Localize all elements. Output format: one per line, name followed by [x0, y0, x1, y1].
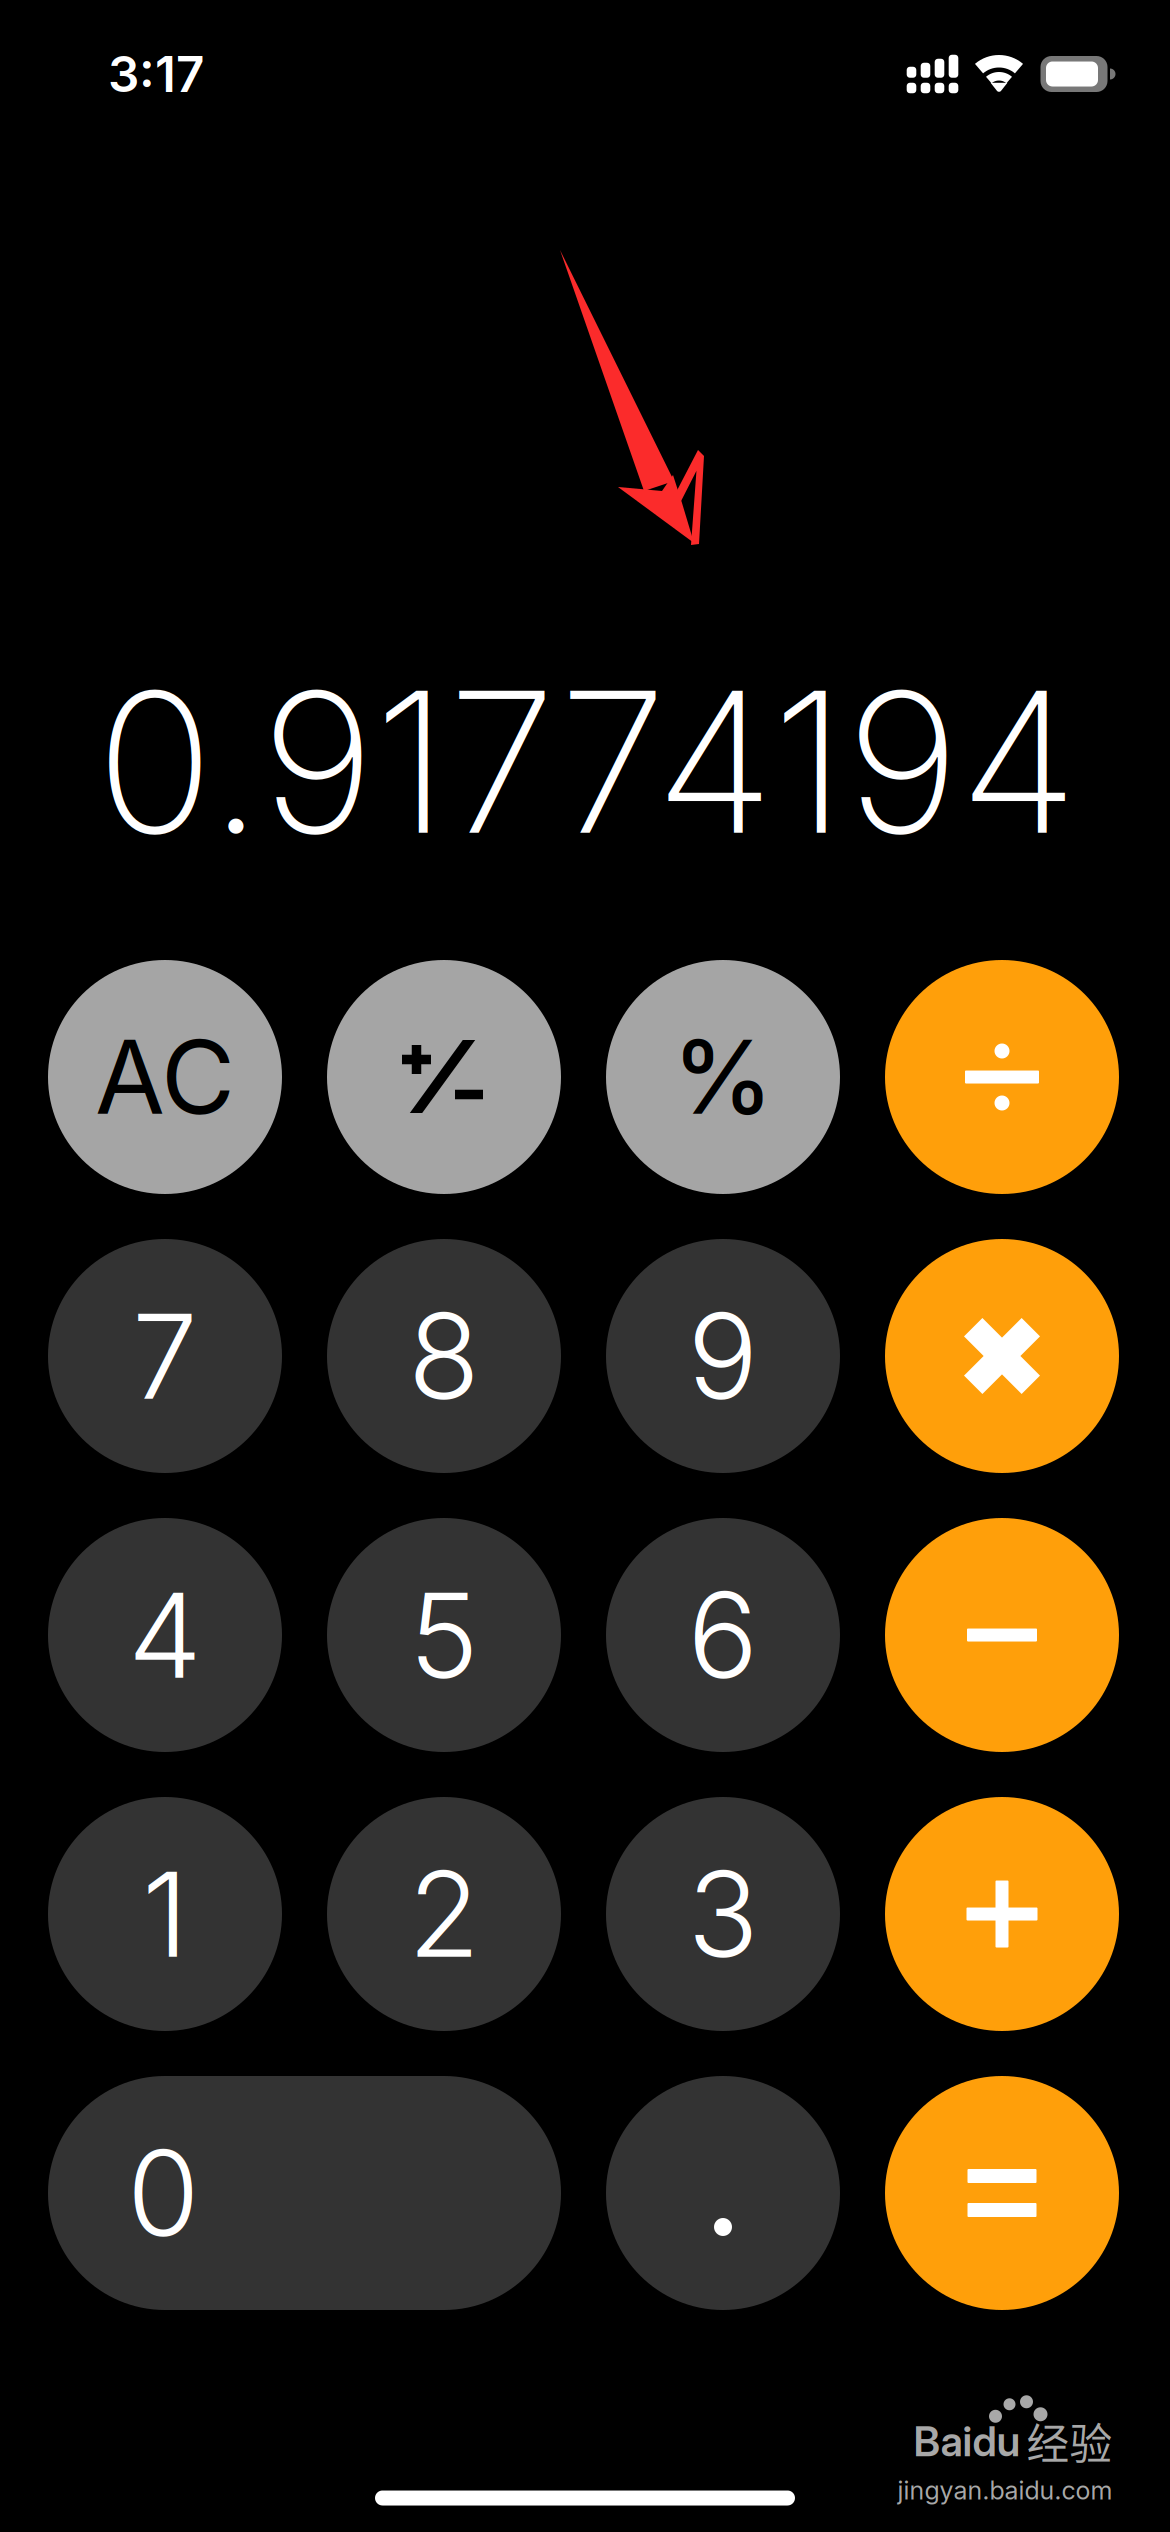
- staticText: 5: [409, 1564, 479, 1706]
- staticText: AC: [95, 1016, 235, 1138]
- button[interactable]: 4: [48, 1518, 282, 1752]
- button[interactable]: 2: [327, 1797, 561, 2031]
- button[interactable]: 7: [48, 1239, 282, 1473]
- button[interactable]: 8: [327, 1239, 561, 1473]
- button[interactable]: 3: [606, 1797, 840, 2031]
- staticText: 0.91774194: [96, 644, 1078, 880]
- staticText: %: [672, 1016, 773, 1138]
- button[interactable]: %: [606, 960, 840, 1194]
- button[interactable]: Divide: [885, 960, 1119, 1194]
- button[interactable]: 9: [606, 1239, 840, 1473]
- staticText: 3:17: [108, 44, 204, 104]
- staticText: jingyan.baidu.com: [897, 2475, 1112, 2506]
- staticText: 7: [132, 1285, 198, 1427]
- button[interactable]: 6: [606, 1518, 840, 1752]
- button[interactable]: 1: [48, 1797, 282, 2031]
- button[interactable]: AC: [48, 960, 282, 1194]
- button[interactable]: Add: [885, 1797, 1119, 2031]
- staticText: 3: [687, 1843, 758, 1985]
- staticText: 2: [408, 1843, 480, 1985]
- staticText: 经验: [1026, 2410, 1112, 2472]
- button[interactable]: Equals: [885, 2076, 1119, 2310]
- staticText: Baidu: [913, 2416, 1020, 2466]
- button[interactable]: 0: [48, 2076, 561, 2310]
- staticText: 6: [687, 1564, 758, 1706]
- button[interactable]: Toggle sign: [327, 960, 561, 1194]
- staticText: 4: [128, 1564, 202, 1706]
- staticText: 8: [408, 1285, 480, 1427]
- button[interactable]: Decimal point: [606, 2076, 840, 2310]
- staticText: 9: [687, 1285, 758, 1427]
- staticText: 0: [127, 2122, 199, 2264]
- button[interactable]: 5: [327, 1518, 561, 1752]
- button[interactable]: Subtract: [885, 1518, 1119, 1752]
- button[interactable]: Multiply: [885, 1239, 1119, 1473]
- staticText: 1: [142, 1843, 188, 1985]
